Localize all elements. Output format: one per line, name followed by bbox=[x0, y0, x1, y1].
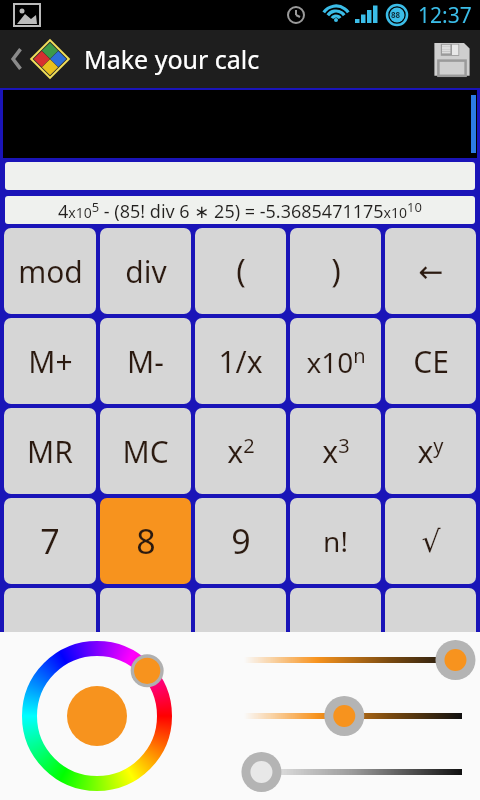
button[interactable] bbox=[385, 588, 476, 674]
button[interactable]: Back bbox=[4, 31, 78, 87]
staticText: n! bbox=[323, 522, 348, 560]
button[interactable]: Save bbox=[424, 31, 480, 87]
button[interactable]: Colour slider bbox=[240, 751, 466, 793]
staticText: Make your calc bbox=[84, 42, 260, 76]
button[interactable]: ) bbox=[290, 228, 381, 314]
staticText: 1/x bbox=[218, 341, 263, 382]
staticText: ( bbox=[236, 249, 246, 293]
staticText: MR bbox=[27, 431, 73, 472]
staticText: div bbox=[125, 251, 167, 292]
staticText: x10n bbox=[306, 342, 366, 381]
staticText: 88 bbox=[391, 9, 401, 20]
button[interactable]: M- bbox=[100, 318, 191, 404]
button[interactable]: div bbox=[100, 228, 191, 314]
button[interactable]: M+ bbox=[4, 318, 96, 404]
staticText: 7 bbox=[40, 518, 60, 564]
button[interactable]: 1/x bbox=[195, 318, 286, 404]
button[interactable]: MC bbox=[100, 408, 191, 494]
button[interactable] bbox=[5, 162, 475, 190]
staticText: M+ bbox=[28, 341, 73, 382]
button[interactable] bbox=[100, 588, 191, 674]
staticText: mod bbox=[18, 251, 83, 292]
button[interactable]: Colour slider bbox=[240, 695, 466, 737]
button[interactable]: x10n bbox=[290, 318, 381, 404]
staticText: √ bbox=[421, 524, 441, 559]
button[interactable]: √ bbox=[385, 498, 476, 584]
button[interactable]: xy bbox=[385, 408, 476, 494]
button[interactable]: x3 bbox=[290, 408, 381, 494]
button[interactable] bbox=[4, 588, 96, 674]
staticText: M- bbox=[127, 341, 164, 382]
staticText: x2 bbox=[227, 431, 255, 472]
button[interactable]: 7 bbox=[4, 498, 96, 584]
button[interactable]: ( bbox=[195, 228, 286, 314]
button[interactable]: 9 bbox=[195, 498, 286, 584]
button[interactable] bbox=[290, 588, 381, 674]
staticText: x3 bbox=[322, 431, 350, 472]
button[interactable]: mod bbox=[4, 228, 96, 314]
button[interactable] bbox=[195, 588, 286, 674]
button[interactable]: MR bbox=[4, 408, 96, 494]
button[interactable]: ← bbox=[385, 228, 476, 314]
button[interactable]: n! bbox=[290, 498, 381, 584]
button[interactable] bbox=[3, 90, 477, 158]
staticText: 9 bbox=[231, 518, 251, 564]
staticText: 8 bbox=[136, 518, 156, 564]
staticText: 4x105 - (85! div 6 ∗ 25) = -5.3685471175… bbox=[58, 198, 422, 223]
button[interactable]: 8 bbox=[100, 498, 191, 584]
staticText: MC bbox=[122, 431, 169, 472]
button[interactable]: Colour wheel bbox=[22, 641, 172, 791]
button[interactable]: x2 bbox=[195, 408, 286, 494]
staticText: xy bbox=[417, 431, 444, 472]
staticText: 12:37 bbox=[418, 1, 472, 30]
staticText: ← bbox=[418, 254, 444, 289]
button[interactable]: CE bbox=[385, 318, 476, 404]
staticText: ) bbox=[331, 249, 341, 293]
staticText: CE bbox=[413, 341, 449, 382]
button[interactable]: Colour slider bbox=[240, 639, 466, 681]
